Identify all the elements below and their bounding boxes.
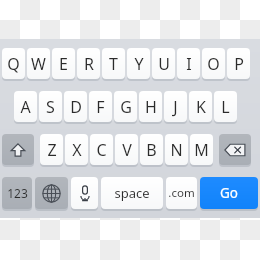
staticText: Z xyxy=(47,139,57,161)
staticText: .com xyxy=(168,185,195,201)
staticText: A xyxy=(20,96,31,118)
staticText: C xyxy=(96,139,107,161)
button[interactable]: H xyxy=(139,91,162,123)
staticText: K xyxy=(196,96,206,118)
button[interactable]: V xyxy=(115,134,138,166)
staticText: O xyxy=(207,53,220,75)
button[interactable]: X xyxy=(65,134,88,166)
staticText: G xyxy=(120,96,132,118)
staticText: Go xyxy=(220,184,238,202)
button[interactable]: Backspace xyxy=(219,134,251,166)
button[interactable]: W xyxy=(27,48,50,80)
button[interactable]: Go xyxy=(200,177,258,210)
button[interactable]: Q xyxy=(2,48,25,80)
button[interactable]: A xyxy=(14,91,37,123)
staticText: N xyxy=(170,139,183,161)
staticText: V xyxy=(122,139,132,161)
staticText: F xyxy=(96,96,105,118)
staticText: 123 xyxy=(7,185,28,201)
button[interactable]: Shift xyxy=(2,134,34,166)
button[interactable]: .com xyxy=(166,177,197,210)
staticText: space xyxy=(114,184,150,202)
button[interactable]: O xyxy=(202,48,225,80)
staticText: M xyxy=(194,139,209,161)
button[interactable]: C xyxy=(90,134,113,166)
staticText: P xyxy=(234,53,244,75)
staticText: J xyxy=(173,96,178,118)
button[interactable]: L xyxy=(214,91,237,123)
button[interactable]: N xyxy=(165,134,188,166)
staticText: U xyxy=(158,53,170,75)
staticText: E xyxy=(59,53,68,75)
staticText: D xyxy=(70,96,82,118)
button[interactable]: P xyxy=(227,48,250,80)
button[interactable]: Z xyxy=(40,134,63,166)
button[interactable]: T xyxy=(102,48,125,80)
staticText: X xyxy=(72,139,82,161)
button[interactable]: 123 xyxy=(2,177,32,210)
staticText: B xyxy=(146,139,157,161)
button[interactable]: U xyxy=(152,48,175,80)
button[interactable]: J xyxy=(164,91,187,123)
button[interactable]: M xyxy=(190,134,213,166)
staticText: Q xyxy=(7,53,20,75)
button[interactable]: S xyxy=(39,91,62,123)
button[interactable]: R xyxy=(77,48,100,80)
staticText: T xyxy=(109,53,118,75)
staticText: S xyxy=(46,96,55,118)
button[interactable]: G xyxy=(114,91,137,123)
button[interactable]: I xyxy=(177,48,200,80)
button[interactable]: D xyxy=(64,91,87,123)
button[interactable]: space xyxy=(101,177,163,210)
button[interactable]: Dictate xyxy=(71,177,98,210)
staticText: R xyxy=(84,53,94,75)
button[interactable]: Y xyxy=(127,48,150,80)
button[interactable]: K xyxy=(189,91,212,123)
button[interactable]: F xyxy=(89,91,112,123)
staticText: W xyxy=(31,53,46,75)
button[interactable]: E xyxy=(52,48,75,80)
staticText: Y xyxy=(134,53,144,75)
button[interactable]: Change keyboard xyxy=(35,177,68,210)
staticText: L xyxy=(221,96,230,118)
button[interactable]: B xyxy=(140,134,163,166)
staticText: H xyxy=(145,96,157,118)
staticText: I xyxy=(186,53,192,75)
